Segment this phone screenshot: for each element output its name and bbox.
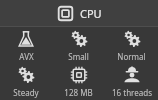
button[interactable]: Thread count [105,63,158,100]
staticText: AVX [19,51,34,62]
staticText: 16 threads [112,87,152,98]
staticText: Normal [117,51,146,62]
button[interactable]: Normal workload [105,27,158,63]
button[interactable]: Memory size [52,63,105,100]
button[interactable]: AVX test [0,27,52,63]
button[interactable]: Small workload [52,27,105,63]
staticText: CPU [80,6,102,21]
button[interactable]: CPU [0,0,158,26]
staticText: Small [68,51,89,62]
button[interactable]: Steady mode [0,63,52,100]
staticText: Steady [13,87,39,98]
staticText: 128 MB [64,87,93,98]
